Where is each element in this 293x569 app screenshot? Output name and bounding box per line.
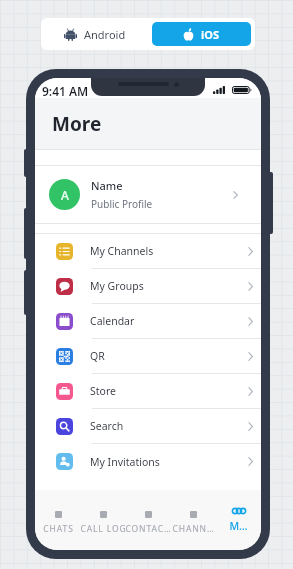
button[interactable]: My Channels [35,234,261,268]
staticText: QR [90,349,105,363]
button[interactable]: Android [41,18,148,50]
button[interactable]: QR [35,339,261,373]
staticText: CHATS [43,523,74,535]
staticText: CALL LOG [80,523,127,535]
button[interactable]: CHANN… [171,490,216,550]
button[interactable]: Calendar [35,304,261,338]
button[interactable]: CALL LOG [81,490,126,550]
staticText: iOS [201,27,220,42]
staticText: Calendar [90,314,135,328]
button[interactable]: My Invitations [35,444,261,479]
staticText: More [52,111,102,137]
staticText: 9:41 AM [42,83,89,99]
button[interactable]: CONTAC… [126,490,171,550]
button[interactable]: My Groups [35,269,261,303]
staticText: My Invitations [90,455,160,469]
staticText: Name [91,178,123,193]
button[interactable]: Search [35,409,261,443]
button[interactable]: A [35,166,261,223]
staticText: Search [90,419,124,433]
staticText: Android [84,27,126,42]
button[interactable]: iOS [152,22,251,46]
staticText: Store [90,384,116,398]
button[interactable]: CHATS [35,490,81,550]
staticText: CONTAC… [125,523,172,535]
staticText: A [61,187,69,203]
staticText: CHANN… [172,523,215,535]
staticText: My Groups [90,279,144,293]
button[interactable]: M… [216,490,261,550]
staticText: My Channels [90,244,154,258]
staticText: M… [229,519,248,533]
staticText: Public Profile [91,197,153,211]
button[interactable]: Store [35,374,261,408]
